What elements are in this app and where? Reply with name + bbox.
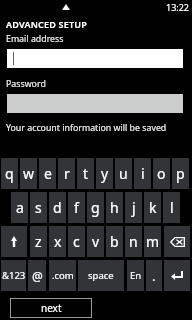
button[interactable]: n (125, 226, 142, 257)
staticText: d (53, 198, 62, 217)
staticText: @ (32, 268, 43, 284)
button[interactable]: z (30, 226, 47, 257)
button[interactable]: g (87, 192, 104, 223)
button[interactable]: En (127, 260, 144, 291)
button[interactable]: d (49, 192, 66, 223)
staticText: m (146, 232, 160, 251)
button[interactable]: u (115, 158, 132, 189)
staticText: a (16, 198, 24, 217)
button[interactable]: s (30, 192, 47, 223)
button[interactable] (7, 49, 183, 68)
button[interactable]: t (77, 158, 94, 189)
staticText: r (64, 164, 70, 183)
staticText: s (35, 198, 42, 217)
button[interactable]: i (134, 158, 151, 189)
staticText: p (176, 164, 185, 183)
button[interactable]: m (144, 226, 161, 257)
button[interactable]: &123 (1, 260, 26, 291)
staticText: n (129, 232, 138, 251)
button[interactable]: h (106, 192, 123, 223)
button[interactable]: q (1, 158, 18, 189)
staticText: b (110, 232, 119, 251)
staticText: g (91, 198, 100, 217)
button[interactable]: Shift (1, 226, 27, 257)
button[interactable]: j (125, 192, 142, 223)
staticText: j (132, 198, 136, 217)
button[interactable]: o (153, 158, 170, 189)
staticText: l (170, 198, 174, 217)
staticText: c (73, 232, 80, 251)
staticText: Your account information will be saved (6, 122, 167, 134)
staticText: . (152, 267, 156, 285)
staticText: En (130, 269, 142, 282)
staticText: e (44, 164, 52, 183)
staticText: t (83, 164, 89, 183)
button[interactable]: Backspace (164, 226, 190, 257)
staticText: u (119, 164, 128, 183)
staticText: z (35, 232, 42, 251)
button[interactable]: b (106, 226, 123, 257)
staticText: k (149, 198, 157, 217)
staticText: Email address (6, 33, 64, 45)
staticText: o (157, 164, 166, 183)
staticText: f (74, 198, 79, 217)
staticText: &123 (2, 269, 26, 282)
button[interactable]: w (20, 158, 37, 189)
staticText: h (110, 198, 119, 217)
button[interactable]: y (96, 158, 113, 189)
staticText: q (5, 164, 14, 183)
button[interactable]: next (10, 298, 92, 318)
staticText: .com (52, 269, 74, 282)
button[interactable]: e (39, 158, 56, 189)
staticText: next (41, 301, 62, 315)
button[interactable]: k (144, 192, 161, 223)
button[interactable]: @ (28, 260, 46, 291)
staticText: ADVANCED SETUP (6, 18, 87, 30)
button[interactable]: f (68, 192, 85, 223)
button[interactable]: c (68, 226, 85, 257)
staticText: space (88, 269, 114, 282)
staticText: y (101, 164, 109, 183)
button[interactable]: l (163, 192, 180, 223)
button[interactable]: p (172, 158, 189, 189)
staticText: v (92, 232, 100, 251)
button[interactable]: space (78, 260, 124, 291)
staticText: w (23, 164, 35, 183)
button[interactable]: Enter (164, 260, 190, 291)
button[interactable]: a (11, 192, 28, 223)
button[interactable]: x (49, 226, 66, 257)
staticText: 13:22 (166, 1, 190, 13)
button[interactable]: . (146, 260, 162, 291)
staticText: x (54, 232, 62, 251)
button[interactable]: r (58, 158, 75, 189)
staticText: i (141, 164, 145, 183)
staticText: Password (6, 78, 46, 90)
button[interactable]: .com (49, 260, 76, 291)
button[interactable]: v (87, 226, 104, 257)
